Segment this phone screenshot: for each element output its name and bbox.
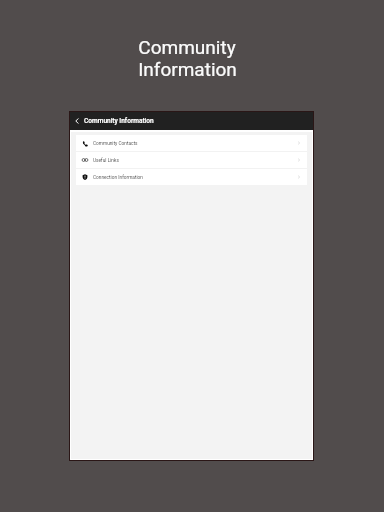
staticText: Connection Information [93,175,143,181]
button[interactable]: Back [70,112,84,130]
staticText: Information [138,58,237,80]
button[interactable]: Community Contacts [76,135,307,151]
staticText: Community [138,36,236,58]
button[interactable]: Connection Information [76,169,307,185]
staticText: Community Information [84,117,154,125]
button[interactable]: Useful Links [76,152,307,168]
staticText: Community Contacts [93,141,138,147]
staticText: Useful Links [93,158,119,164]
